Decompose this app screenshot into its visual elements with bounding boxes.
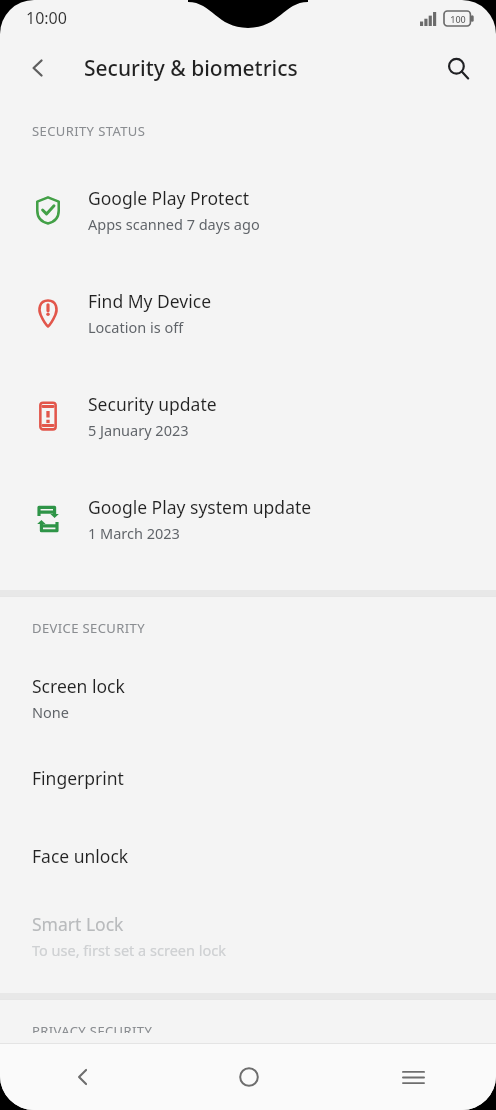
- staticText: Google Play Protect: [88, 186, 249, 210]
- staticText: Smart Lock: [32, 912, 124, 936]
- button[interactable]: Find My Device: [0, 261, 496, 364]
- staticText: 5 January 2023: [88, 420, 189, 440]
- button[interactable]: Google Play system update: [0, 467, 496, 570]
- button[interactable]: Google Play Protect: [0, 158, 496, 261]
- button[interactable]: Smart Lock: [0, 895, 496, 977]
- staticText: DEVICE SECURITY: [32, 619, 496, 637]
- button[interactable]: Face unlock: [0, 817, 496, 895]
- button[interactable]: Search: [434, 44, 482, 92]
- button[interactable]: Back: [0, 1044, 166, 1110]
- staticText: Apps scanned 7 days ago: [88, 214, 260, 234]
- staticText: Google Play system update: [88, 495, 312, 519]
- button[interactable]: Home: [166, 1044, 331, 1110]
- staticText: 100: [450, 13, 466, 25]
- staticText: SECURITY STATUS: [32, 122, 496, 140]
- button[interactable]: Back: [14, 44, 62, 92]
- staticText: 10:00: [26, 7, 67, 29]
- button[interactable]: Security update: [0, 364, 496, 467]
- staticText: Security update: [88, 392, 217, 416]
- button[interactable]: Screen lock: [0, 657, 496, 739]
- staticText: Fingerprint: [32, 766, 124, 790]
- staticText: To use, first set a screen lock: [32, 940, 226, 960]
- staticText: Security & biometrics: [84, 54, 298, 83]
- staticText: PRIVACY SECURITY: [32, 1022, 496, 1033]
- staticText: Location is off: [88, 317, 184, 337]
- staticText: None: [32, 702, 69, 722]
- staticText: Face unlock: [32, 844, 129, 868]
- staticText: 1 March 2023: [88, 523, 180, 543]
- button[interactable]: Fingerprint: [0, 739, 496, 817]
- staticText: Screen lock: [32, 674, 125, 698]
- staticText: Find My Device: [88, 289, 212, 313]
- button[interactable]: Recent apps: [331, 1044, 496, 1110]
